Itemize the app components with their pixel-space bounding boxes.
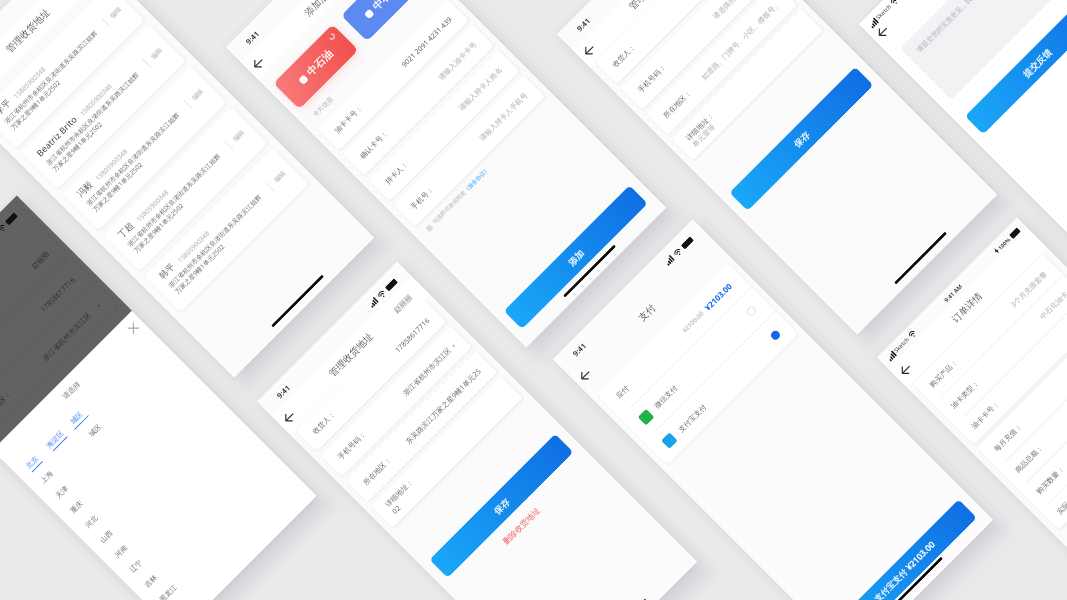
- button[interactable]: 手机号码：: [620, 0, 772, 110]
- staticText: 万家之星9幢1单元2502: [50, 120, 104, 173]
- button[interactable]: Beatriz Brito: [21, 24, 186, 190]
- staticText: 卡片信息: [311, 95, 335, 119]
- staticText: 东吴路滨江万家之星9幢1单元25: [403, 366, 483, 446]
- button[interactable]: 收货人：: [295, 299, 447, 451]
- button[interactable]: 河北: [83, 513, 99, 530]
- button[interactable]: 油卡类型：: [942, 282, 1067, 417]
- button[interactable]: 所在地区：: [0, 284, 118, 436]
- staticText: 请提交您的宝贵意见，我们会尽快处理: [915, 0, 1003, 54]
- button[interactable]: 李平: [0, 0, 145, 149]
- staticText: 油卡卡号：: [969, 399, 1001, 431]
- button[interactable]: 所在地区：: [646, 0, 798, 135]
- staticText: 支付: [636, 302, 658, 324]
- staticText: 管理收货地址: [627, 0, 675, 12]
- button[interactable]: 中石油: [273, 24, 359, 109]
- staticText: 所在地区：: [0, 389, 13, 421]
- staticText: 手机号码：: [336, 429, 368, 461]
- staticText: 订单详情: [950, 290, 985, 325]
- button[interactable]: 持卡人：: [368, 49, 520, 201]
- staticText: 支付宝支付: [676, 402, 708, 434]
- staticText: 9:41: [574, 16, 592, 34]
- staticText: 商品总额：: [1013, 443, 1045, 475]
- button[interactable]: 手机号码：: [320, 325, 472, 477]
- staticText: 丁超: [116, 220, 137, 241]
- staticText: 浙江省杭州市余杭区良渚街道东吴路滨江姐辉: [167, 193, 263, 289]
- button[interactable]: 支付宝支付: [654, 320, 790, 456]
- button[interactable]: 保存: [429, 434, 573, 578]
- button[interactable]: 添加: [504, 185, 648, 329]
- button[interactable]: 实际支付：: [1049, 389, 1067, 522]
- button[interactable]: Back: [889, 354, 922, 386]
- button[interactable]: 河南: [113, 543, 129, 559]
- button[interactable]: Back: [573, 34, 605, 67]
- button[interactable]: 辽宁: [128, 558, 144, 574]
- button[interactable]: 支付宝支付 ¥2103.00: [833, 499, 977, 600]
- button[interactable]: 北京: [24, 454, 40, 470]
- button[interactable]: 每月充值：: [985, 325, 1067, 460]
- button[interactable]: 商品总额：: [1006, 347, 1067, 482]
- button[interactable]: 海淀区: [44, 429, 68, 452]
- button[interactable]: Back: [273, 401, 305, 434]
- button[interactable]: Back: [866, 16, 899, 48]
- button[interactable]: 上海: [39, 469, 55, 485]
- staticText: 9:41: [243, 29, 261, 47]
- button[interactable]: 购买产品：: [921, 261, 1056, 396]
- staticText: 浙江省杭州市余杭区良渚街道东吴路滨江姐辉: [45, 71, 141, 167]
- button[interactable]: 提交反馈: [965, 0, 1067, 134]
- staticText: 保存: [791, 129, 812, 149]
- button[interactable]: 城区: [66, 407, 89, 430]
- button[interactable]: 详细地址：: [0, 310, 143, 462]
- button[interactable]: 收货人：: [0, 233, 67, 385]
- button[interactable]: 手机号：: [393, 75, 545, 227]
- staticText: 9:41: [274, 383, 292, 401]
- button[interactable]: 吉林: [143, 573, 159, 589]
- button[interactable]: 应付: [606, 272, 742, 409]
- staticText: 手机号：: [409, 184, 436, 211]
- staticText: 万家之星9幢1单元2502: [173, 242, 226, 296]
- button[interactable]: 编辑: [108, 5, 123, 20]
- staticText: 中石油: [304, 46, 336, 78]
- button[interactable]: Back: [242, 47, 274, 80]
- button[interactable]: Back: [569, 359, 601, 392]
- button[interactable]: 微信支付: [630, 296, 766, 433]
- staticText: 请选择所在地区 ›: [710, 0, 758, 21]
- button[interactable]: 油卡卡号：: [317, 0, 469, 150]
- staticText: 详细地址：: [7, 414, 39, 446]
- staticText: 实际支付：: [1055, 484, 1067, 516]
- button[interactable]: 韩平: [144, 147, 309, 313]
- staticText: 持卡人：: [383, 159, 410, 186]
- staticText: 浙江省杭州市余杭区良渚街道东吴路滨江姐辉: [126, 152, 222, 248]
- button[interactable]: 保存: [729, 67, 873, 211]
- staticText: 油卡卡号：: [332, 103, 364, 135]
- button[interactable]: 详细地址：: [671, 9, 823, 161]
- button[interactable]: 山西: [98, 528, 114, 545]
- button[interactable]: 确认卡号：: [342, 24, 494, 176]
- button[interactable]: 城区: [87, 422, 103, 438]
- staticText: 9:41 AM: [942, 282, 964, 304]
- button[interactable]: 编辑: [149, 46, 164, 61]
- button[interactable]: 天津: [53, 484, 70, 500]
- staticText: 手机号码：: [636, 62, 668, 94]
- button[interactable]: 所在地区：: [346, 350, 498, 502]
- staticText: 应付: [614, 383, 631, 400]
- button[interactable]: 中石化: [341, 0, 434, 42]
- button[interactable]: 详细地址：: [371, 376, 523, 528]
- button[interactable]: 黑龙江: [157, 583, 179, 600]
- staticText: 单元室等: [690, 122, 717, 149]
- button[interactable]: Close: [127, 322, 140, 334]
- button[interactable]: 删除收货地址: [501, 505, 542, 546]
- button[interactable]: 赵丽丽: [392, 292, 414, 315]
- button[interactable]: 编辑: [272, 169, 287, 184]
- button[interactable]: 收货人：: [595, 0, 747, 84]
- button[interactable]: 丁超: [103, 106, 268, 272]
- button[interactable]: 重庆: [68, 499, 85, 515]
- staticText: 浙江省杭州市滨江区 ›: [400, 340, 458, 398]
- button[interactable]: 编辑: [231, 128, 246, 143]
- staticText: 管理收货地址: [4, 6, 52, 55]
- button[interactable]: 请提交您的宝贵意见，我们会尽快处理: [900, 0, 1067, 100]
- button[interactable]: 购买数量：: [1027, 368, 1067, 503]
- button[interactable]: 手机号码：: [0, 259, 92, 411]
- button[interactable]: 冯毅: [62, 65, 227, 231]
- button[interactable]: 编辑: [190, 87, 205, 102]
- button[interactable]: 油卡卡号：: [963, 303, 1067, 437]
